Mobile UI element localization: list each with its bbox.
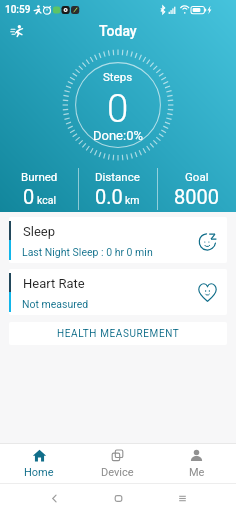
staticText: HEALTH MEASUREMENT <box>57 328 180 340</box>
button[interactable]: Activity <box>6 20 28 42</box>
staticText: Steps <box>103 70 133 83</box>
staticText: Device <box>101 466 134 479</box>
button[interactable]: Heart Rate <box>9 269 227 315</box>
staticText: 8000 <box>174 185 219 208</box>
button[interactable]: Home <box>108 488 128 508</box>
staticText: 0 <box>107 86 129 131</box>
staticText: Goal <box>185 170 209 183</box>
staticText: Distance <box>95 170 140 183</box>
staticText: Me <box>189 466 205 479</box>
staticText: Sleep <box>23 224 55 239</box>
staticText: Burned <box>21 170 58 183</box>
button[interactable]: Sleep <box>9 217 227 263</box>
button[interactable]: Back <box>44 488 64 508</box>
staticText: Last Night Sleep : 0 hr 0 min <box>22 246 153 258</box>
button[interactable]: HEALTH MEASUREMENT <box>9 322 227 345</box>
staticText: Not measured <box>22 298 89 310</box>
staticText: 10:59 <box>5 4 31 16</box>
staticText: Done:0% <box>93 128 143 143</box>
button[interactable]: Device <box>78 444 157 483</box>
staticText: Heart Rate <box>23 276 85 291</box>
button[interactable]: Me <box>157 444 236 483</box>
button[interactable]: Recents <box>172 488 192 508</box>
staticText: kcal <box>37 194 56 206</box>
staticText: 0.0 <box>95 185 123 208</box>
staticText: 0 <box>23 185 35 208</box>
button[interactable]: Home <box>0 444 78 483</box>
staticText: km <box>125 194 140 206</box>
staticText: Home <box>24 466 54 479</box>
staticText: Today <box>99 23 137 39</box>
